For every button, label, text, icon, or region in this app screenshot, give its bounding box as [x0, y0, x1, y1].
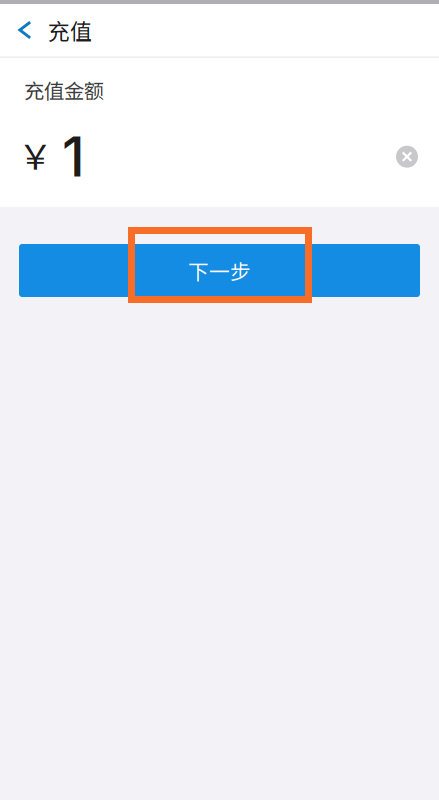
button[interactable]: Back: [0, 4, 48, 56]
staticText: 充值金额: [24, 75, 104, 104]
staticText: 充值: [48, 14, 92, 46]
button[interactable]: Clear amount: [396, 146, 418, 168]
staticText: 下一步: [188, 255, 251, 285]
button[interactable]: 下一步: [19, 244, 420, 297]
staticText: 1: [62, 123, 85, 190]
staticText: ￥: [18, 129, 53, 180]
